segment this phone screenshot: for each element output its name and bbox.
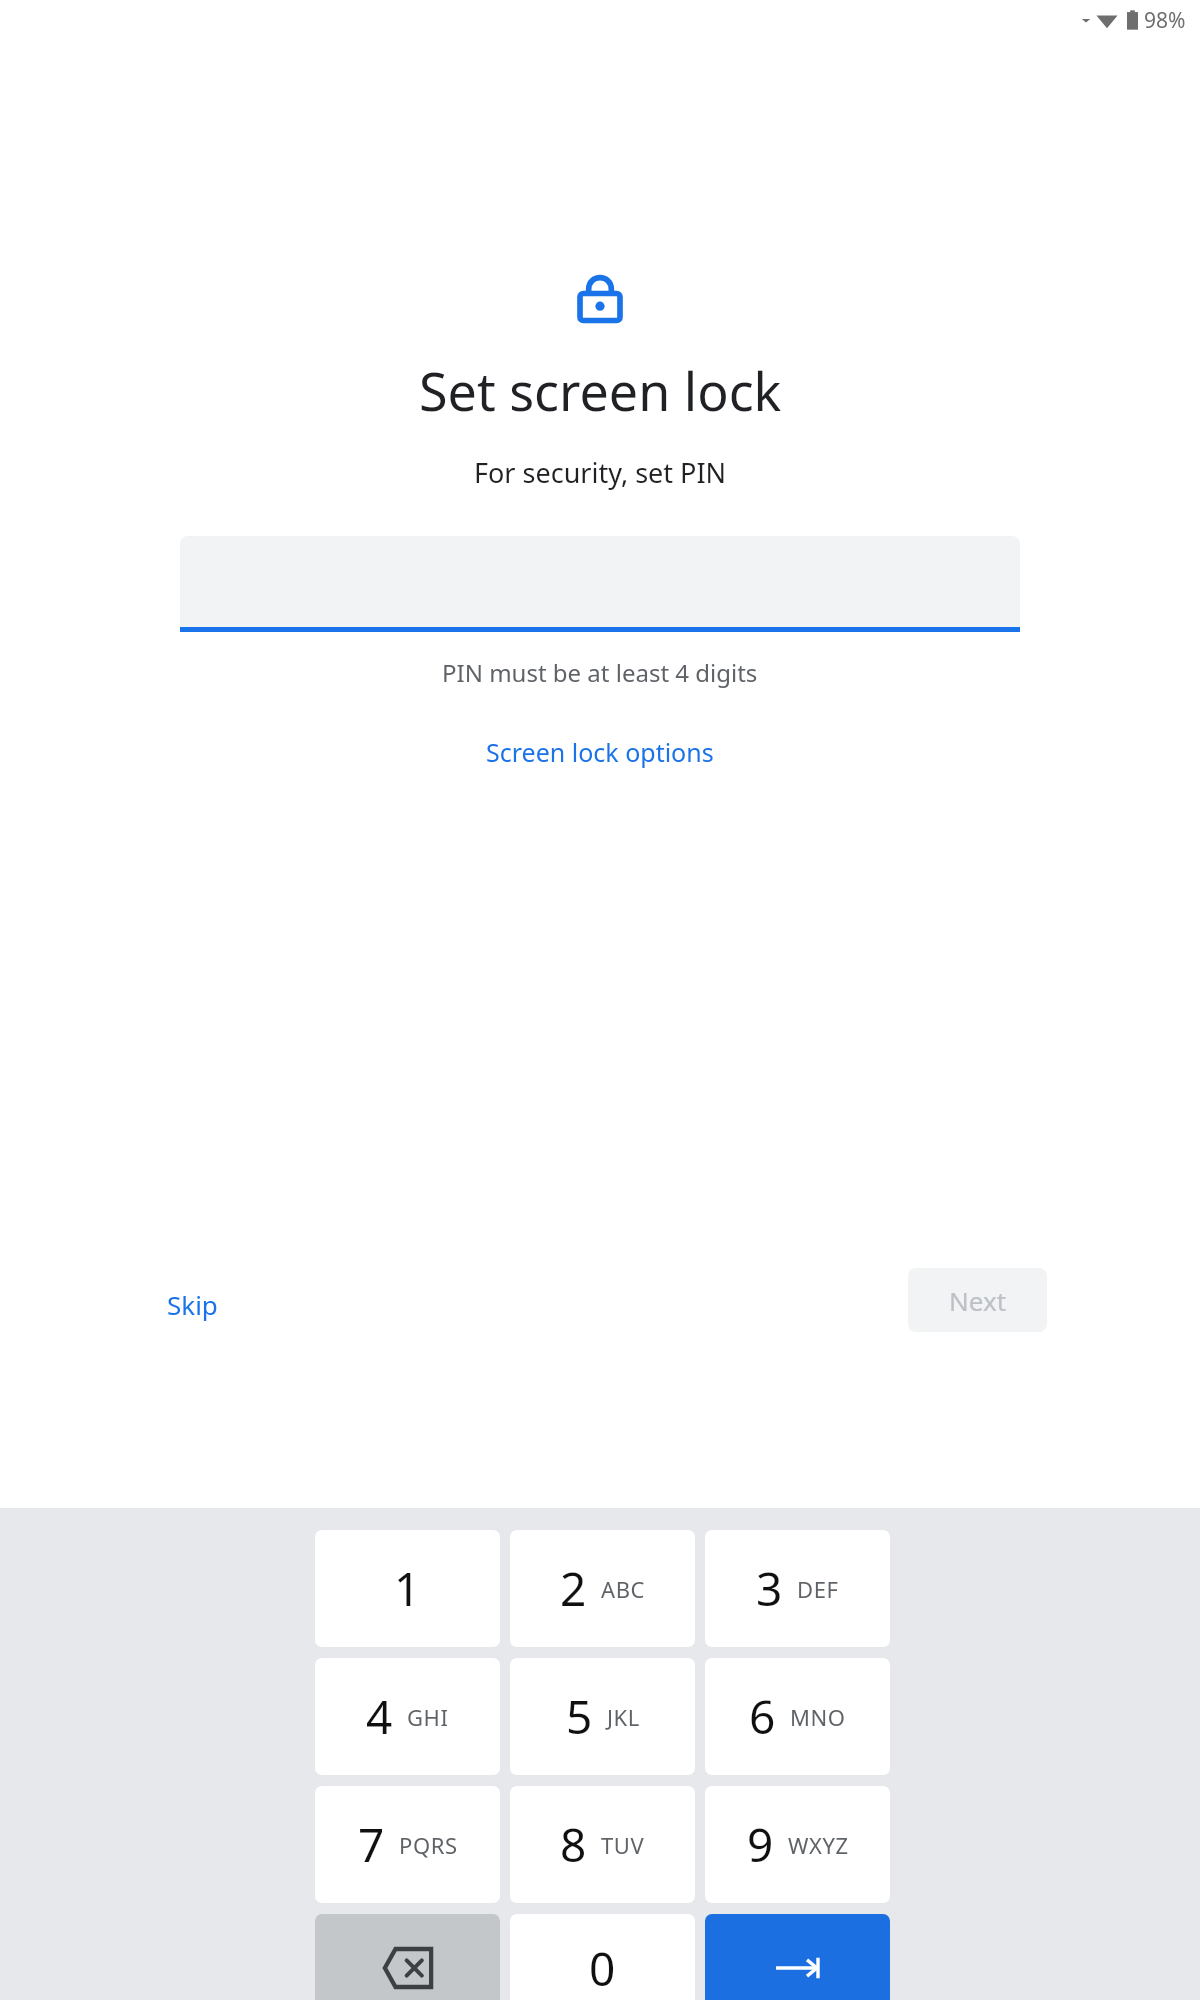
- staticText: 3: [756, 1557, 783, 1620]
- staticText: 98%: [1144, 6, 1186, 35]
- staticText: 5: [566, 1685, 593, 1748]
- staticText: 8: [560, 1813, 587, 1876]
- staticText: PQRS: [399, 1830, 458, 1860]
- staticText: 9: [747, 1813, 774, 1876]
- button[interactable]: Next: [908, 1268, 1047, 1332]
- staticText: PIN must be at least 4 digits: [442, 656, 758, 689]
- button[interactable]: Delete: [315, 1914, 500, 2000]
- button[interactable]: [180, 536, 1020, 632]
- staticText: For security, set PIN: [474, 454, 727, 491]
- button[interactable]: 2: [510, 1530, 695, 1647]
- button[interactable]: Skip: [155, 1277, 230, 1332]
- staticText: 6: [749, 1685, 776, 1748]
- staticText: 2: [560, 1557, 587, 1620]
- staticText: 1: [394, 1557, 421, 1620]
- staticText: WXYZ: [788, 1830, 849, 1860]
- staticText: TUV: [601, 1830, 645, 1860]
- staticText: JKL: [607, 1702, 640, 1732]
- button[interactable]: Next: [705, 1914, 890, 2000]
- staticText: ABC: [601, 1574, 646, 1604]
- staticText: DEF: [797, 1574, 839, 1604]
- button[interactable]: 4: [315, 1658, 500, 1775]
- button[interactable]: 6: [705, 1658, 890, 1775]
- staticText: Skip: [167, 1287, 218, 1322]
- button[interactable]: 0: [510, 1914, 695, 2000]
- button[interactable]: 5: [510, 1658, 695, 1775]
- staticText: Screen lock options: [486, 735, 714, 769]
- button[interactable]: 8: [510, 1786, 695, 1903]
- staticText: Next: [949, 1283, 1007, 1318]
- button[interactable]: 3: [705, 1530, 890, 1647]
- button[interactable]: 9: [705, 1786, 890, 1903]
- staticText: Set screen lock: [419, 355, 782, 426]
- button[interactable]: 7: [315, 1786, 500, 1903]
- button[interactable]: Screen lock options: [476, 729, 724, 775]
- staticText: MNO: [790, 1702, 846, 1732]
- staticText: 7: [358, 1813, 385, 1876]
- staticText: 0: [589, 1937, 616, 2000]
- button[interactable]: 1: [315, 1530, 500, 1647]
- staticText: 4: [366, 1685, 393, 1748]
- staticText: GHI: [407, 1702, 449, 1732]
